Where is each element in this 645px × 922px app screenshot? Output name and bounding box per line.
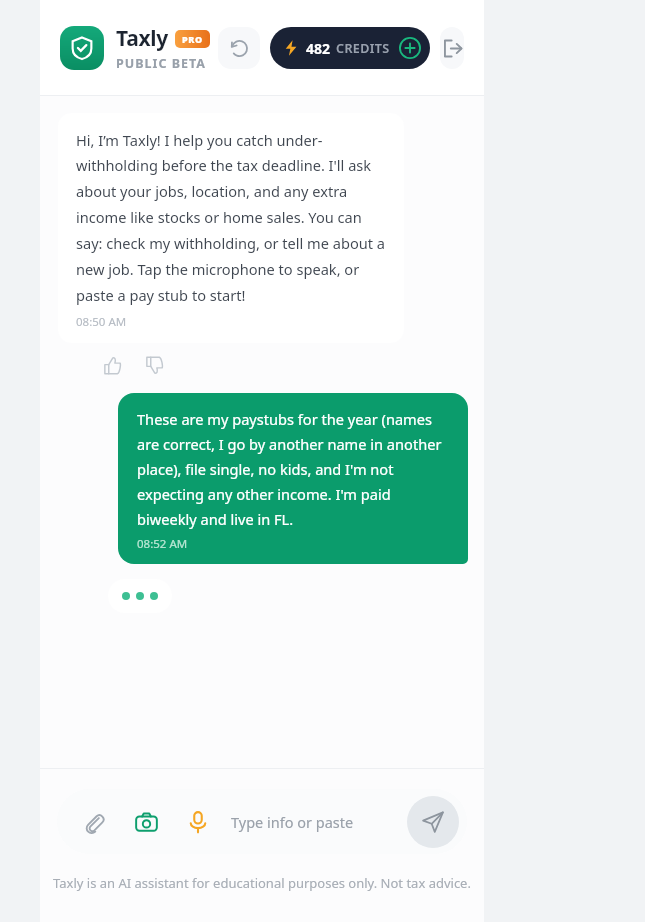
staticText: CREDITS	[336, 40, 390, 57]
staticText: 08:52 AM	[137, 536, 188, 552]
button[interactable]: Take photo	[129, 805, 163, 839]
button[interactable]: Taxly logo	[60, 26, 104, 70]
staticText: 08:50 AM	[76, 314, 127, 330]
staticText: Taxly is an AI assistant for educational…	[53, 874, 471, 892]
other: Add credits	[399, 37, 421, 59]
staticText: Type info or paste screenshot	[231, 812, 407, 832]
staticText: PRO	[182, 33, 203, 45]
button[interactable]: Good response	[98, 351, 126, 379]
button[interactable]: Sign out	[440, 27, 464, 69]
staticText: Taxly	[116, 24, 168, 53]
button[interactable]: Send message	[407, 796, 459, 848]
staticText: Hi, I’m Taxly! I help you catch under-wi…	[76, 130, 388, 306]
button[interactable]: Hi, I’m Taxly! I help you catch under-wi…	[58, 113, 404, 343]
staticText: 482	[306, 39, 331, 58]
button[interactable]: Voice input	[181, 805, 215, 839]
button[interactable]: These are my paystubs for the year (name…	[118, 393, 468, 564]
button[interactable]: 482	[270, 27, 430, 69]
button[interactable]: Bad response	[140, 351, 168, 379]
staticText: PUBLIC BETA	[116, 55, 206, 72]
button[interactable]: Reset conversation	[218, 27, 260, 69]
button[interactable]: Attach file	[57, 789, 467, 854]
staticText: These are my paystubs for the year (name…	[137, 409, 451, 529]
button[interactable]: Attach file	[77, 805, 111, 839]
